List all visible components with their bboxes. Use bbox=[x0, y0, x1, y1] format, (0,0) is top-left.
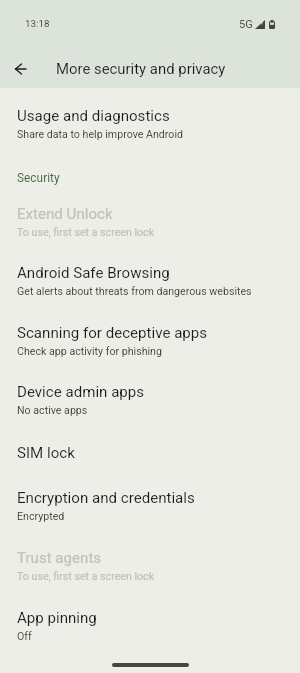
staticText: 5G bbox=[239, 17, 253, 31]
button[interactable]: Security bbox=[0, 163, 300, 193]
button[interactable]: Device admin apps bbox=[0, 371, 300, 432]
staticText: 13:18 bbox=[25, 17, 50, 30]
staticText: App pinning bbox=[17, 610, 97, 627]
button[interactable]: Back bbox=[7, 55, 35, 83]
staticText: Check app activity for phishing bbox=[17, 344, 162, 358]
button[interactable]: Extend Unlock bbox=[0, 193, 300, 252]
button[interactable]: App pinning bbox=[0, 597, 300, 657]
staticText: Share data to help improve Android bbox=[17, 127, 183, 141]
staticText: Usage and diagnostics bbox=[17, 108, 170, 125]
staticText: To use, first set a screen lock bbox=[17, 569, 155, 583]
button[interactable]: Android Safe Browsing bbox=[0, 252, 300, 312]
staticText: To use, first set a screen lock bbox=[17, 225, 155, 239]
staticText: Encrypted bbox=[17, 509, 65, 523]
staticText: Device admin apps bbox=[17, 384, 145, 401]
button[interactable]: Usage and diagnostics bbox=[0, 95, 300, 155]
staticText: No active apps bbox=[17, 403, 88, 417]
staticText: Android Safe Browsing bbox=[17, 265, 170, 282]
staticText: Scanning for deceptive apps bbox=[17, 325, 208, 342]
staticText: SIM lock bbox=[17, 445, 75, 462]
staticText: Get alerts about threats from dangerous … bbox=[17, 284, 252, 298]
button[interactable]: SIM lock bbox=[0, 432, 300, 477]
staticText: Off bbox=[17, 629, 32, 643]
staticText: Encryption and credentials bbox=[17, 490, 195, 507]
button[interactable]: Scanning for deceptive apps bbox=[0, 312, 300, 371]
button[interactable]: Encryption and credentials bbox=[0, 477, 300, 537]
staticText: More security and privacy bbox=[56, 60, 226, 78]
button[interactable]: Trust agents bbox=[0, 537, 300, 597]
staticText: Extend Unlock bbox=[17, 206, 113, 223]
staticText: Trust agents bbox=[17, 550, 102, 567]
staticText: Security bbox=[17, 170, 60, 185]
